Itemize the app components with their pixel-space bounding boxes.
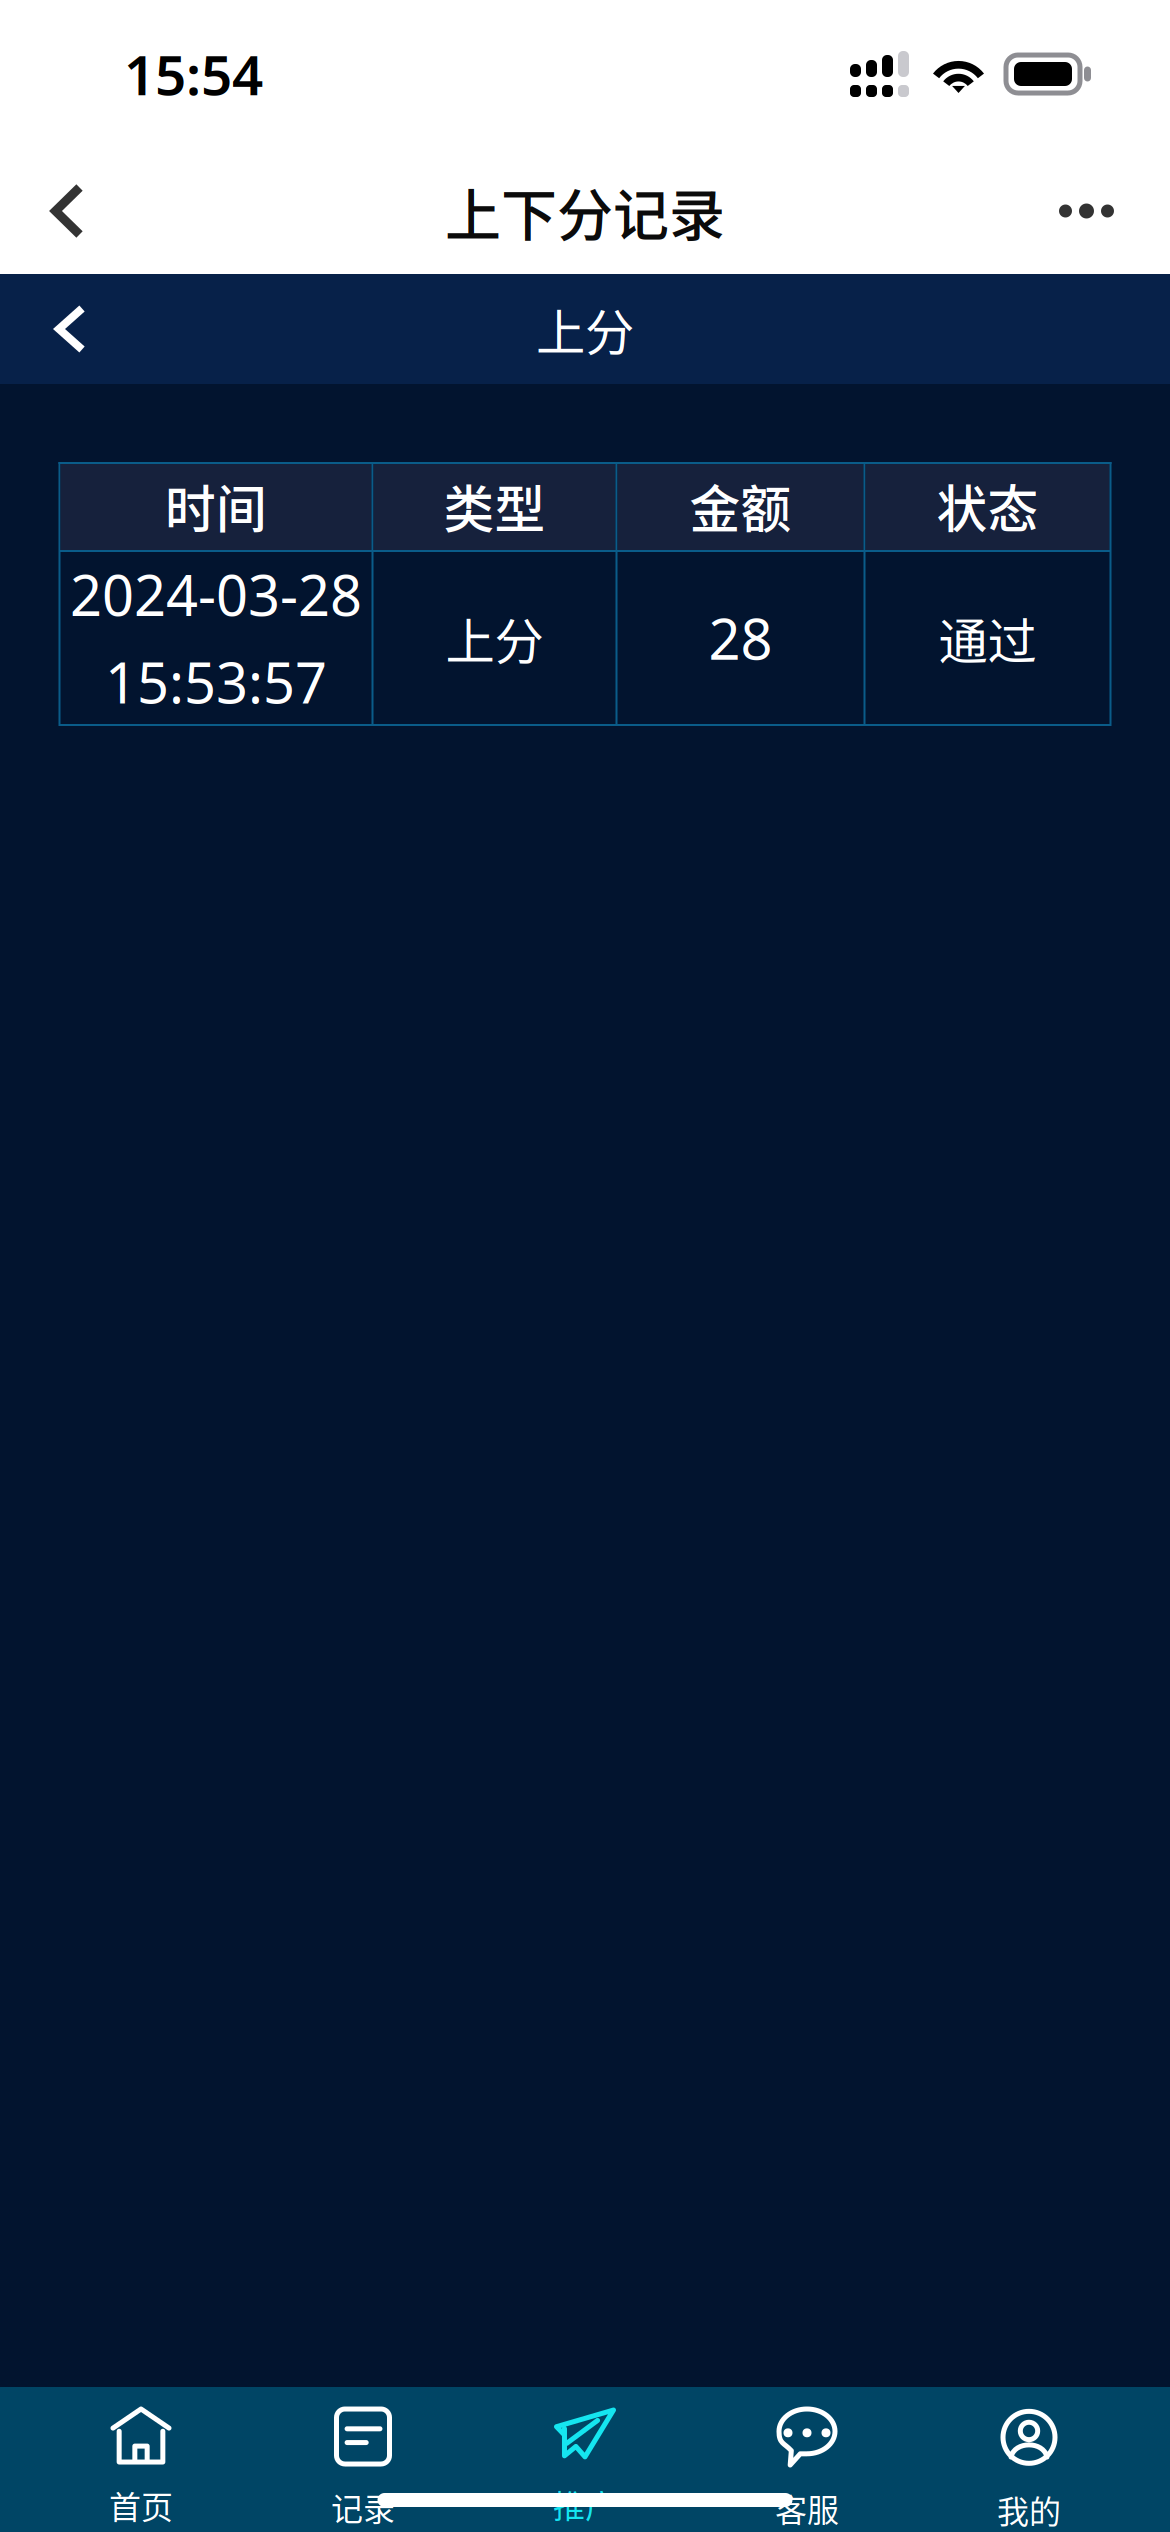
staticText: 首页 — [109, 2482, 173, 2528]
button[interactable]: 记录 — [252, 2387, 474, 2532]
staticText: 2024-03-28 — [70, 557, 362, 631]
button[interactable]: 推广 — [474, 2387, 696, 2532]
staticText: 上分 — [445, 602, 543, 674]
staticText: 15:53:57 — [105, 644, 327, 719]
button[interactable]: 客服 — [696, 2387, 918, 2532]
button[interactable]: Back — [0, 148, 110, 274]
staticText: 客服 — [775, 2485, 839, 2531]
staticText: 时间 — [165, 469, 267, 543]
staticText: 15:54 — [124, 38, 263, 110]
staticText: 通过 — [938, 602, 1036, 674]
button[interactable]: 我的 — [918, 2387, 1140, 2532]
staticText: 上下分记录 — [445, 170, 725, 252]
staticText: 记录 — [331, 2484, 395, 2530]
staticText: 28 — [708, 601, 772, 675]
button[interactable]: Back — [0, 274, 127, 384]
staticText: 状态 — [936, 469, 1038, 543]
staticText: 金额 — [689, 469, 791, 543]
staticText: 类型 — [443, 469, 545, 543]
staticText: 上分 — [536, 293, 634, 365]
button[interactable]: More — [1033, 148, 1170, 274]
staticText: 推广 — [553, 2481, 617, 2527]
staticText: 我的 — [997, 2486, 1061, 2532]
button[interactable]: 首页 — [30, 2387, 252, 2532]
